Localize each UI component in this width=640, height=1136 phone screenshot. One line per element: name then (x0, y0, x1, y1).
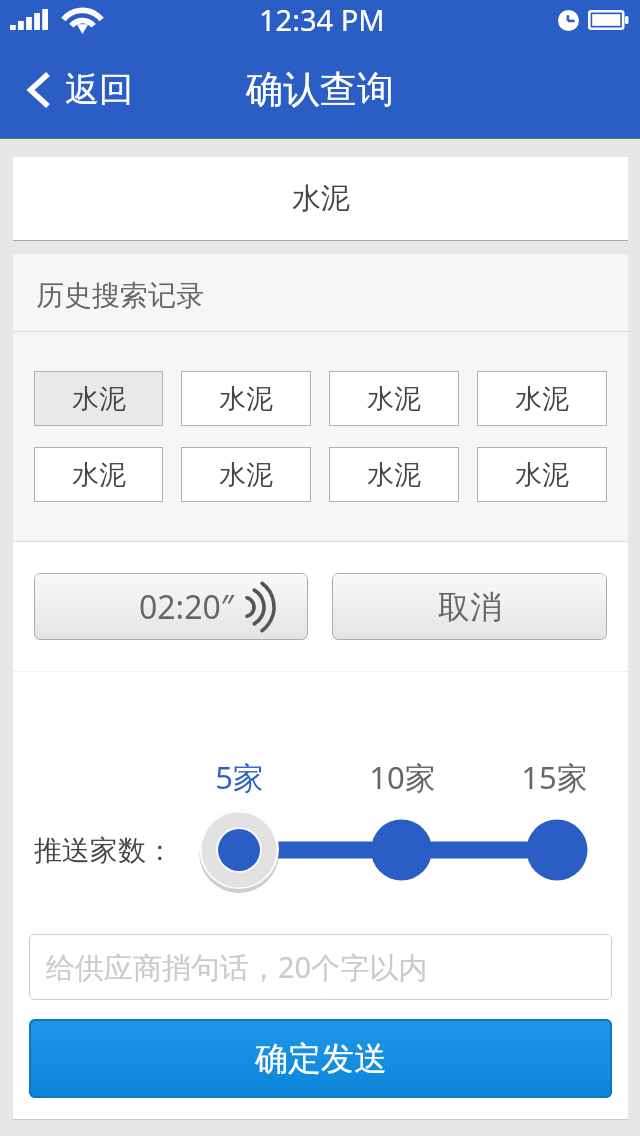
button[interactable]: 水泥 (13, 157, 628, 240)
button[interactable]: 返回 (0, 58, 153, 121)
button[interactable]: 水泥 (477, 447, 607, 502)
button[interactable]: 水泥 (181, 447, 311, 502)
button[interactable]: 水泥 (329, 447, 459, 502)
staticText: 水泥 (367, 382, 421, 416)
button[interactable]: 水泥 (181, 371, 311, 426)
staticText: 水泥 (292, 180, 350, 217)
staticText: 推送家数： (34, 833, 174, 868)
button[interactable]: 水泥 (477, 371, 607, 426)
button[interactable]: 02:20″ (34, 573, 308, 640)
staticText: 返回 (65, 68, 133, 111)
button[interactable]: 取消 (332, 573, 607, 640)
button[interactable]: 确定发送 (29, 1019, 612, 1098)
staticText: 02:20″ (139, 585, 234, 629)
staticText: 水泥 (219, 382, 273, 416)
staticText: 10家 (369, 756, 436, 798)
staticText: 12:34 PM (259, 0, 385, 39)
button[interactable]: 水泥 (329, 371, 459, 426)
staticText: 确定发送 (255, 1038, 387, 1080)
staticText: 5家 (215, 756, 264, 798)
staticText: 水泥 (72, 382, 126, 416)
staticText: 历史搜索记录 (36, 278, 204, 313)
staticText: 15家 (521, 756, 588, 798)
staticText: 水泥 (515, 458, 569, 492)
button[interactable]: 水泥 (34, 371, 163, 426)
staticText: 水泥 (219, 458, 273, 492)
button[interactable]: 给供应商捎句话，20个字以内 (29, 934, 612, 1000)
staticText: 水泥 (72, 458, 126, 492)
staticText: 水泥 (515, 382, 569, 416)
button[interactable]: 水泥 (34, 447, 163, 502)
staticText: 水泥 (367, 458, 421, 492)
staticText: 取消 (438, 587, 502, 627)
staticText: 确认查询 (246, 66, 394, 113)
staticText: 给供应商捎句话，20个字以内 (46, 947, 428, 987)
